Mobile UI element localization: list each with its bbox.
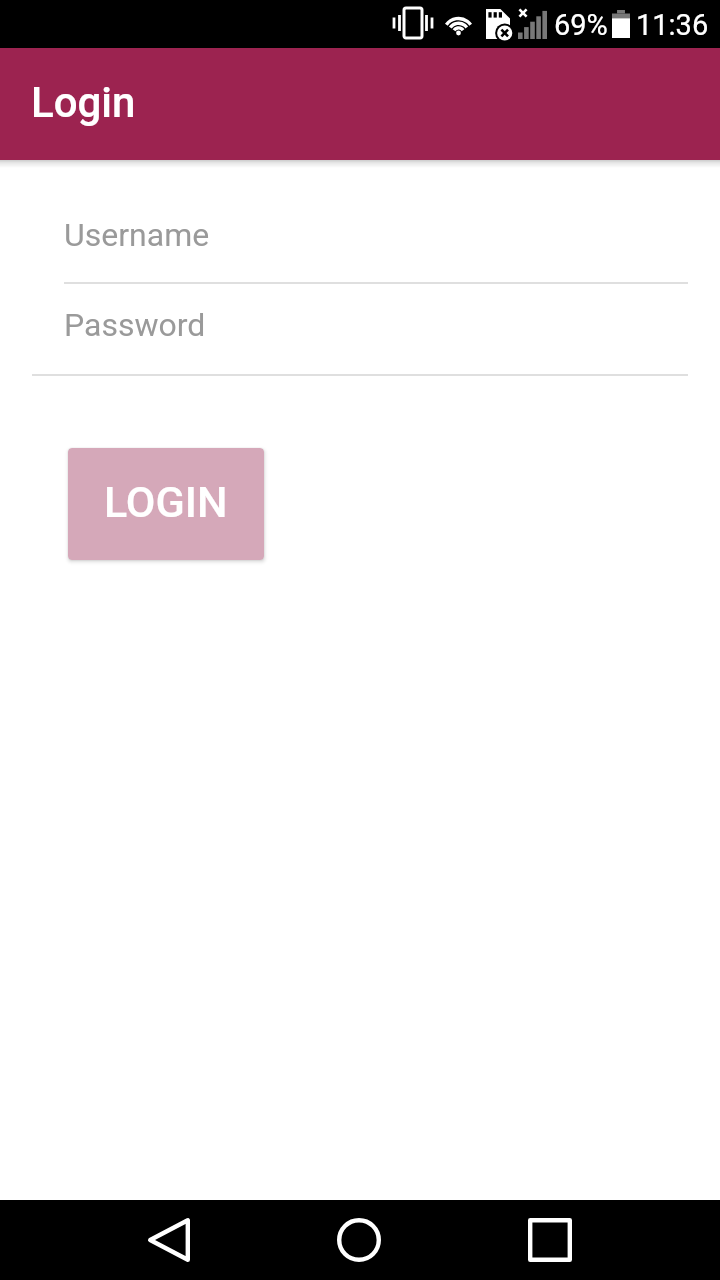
button[interactable]: Recents: [500, 1200, 600, 1280]
staticText: Login: [31, 78, 136, 127]
button[interactable]: Back: [119, 1200, 219, 1280]
button[interactable]: Home: [309, 1200, 409, 1280]
staticText: Password: [64, 306, 206, 344]
staticText: Username: [64, 216, 210, 254]
button[interactable]: Password: [32, 284, 688, 376]
staticText: LOGIN: [104, 477, 228, 527]
staticText: 69%: [554, 8, 608, 42]
staticText: 11:36: [636, 8, 709, 42]
button[interactable]: LOGIN: [68, 448, 264, 560]
button[interactable]: Username: [64, 190, 688, 284]
